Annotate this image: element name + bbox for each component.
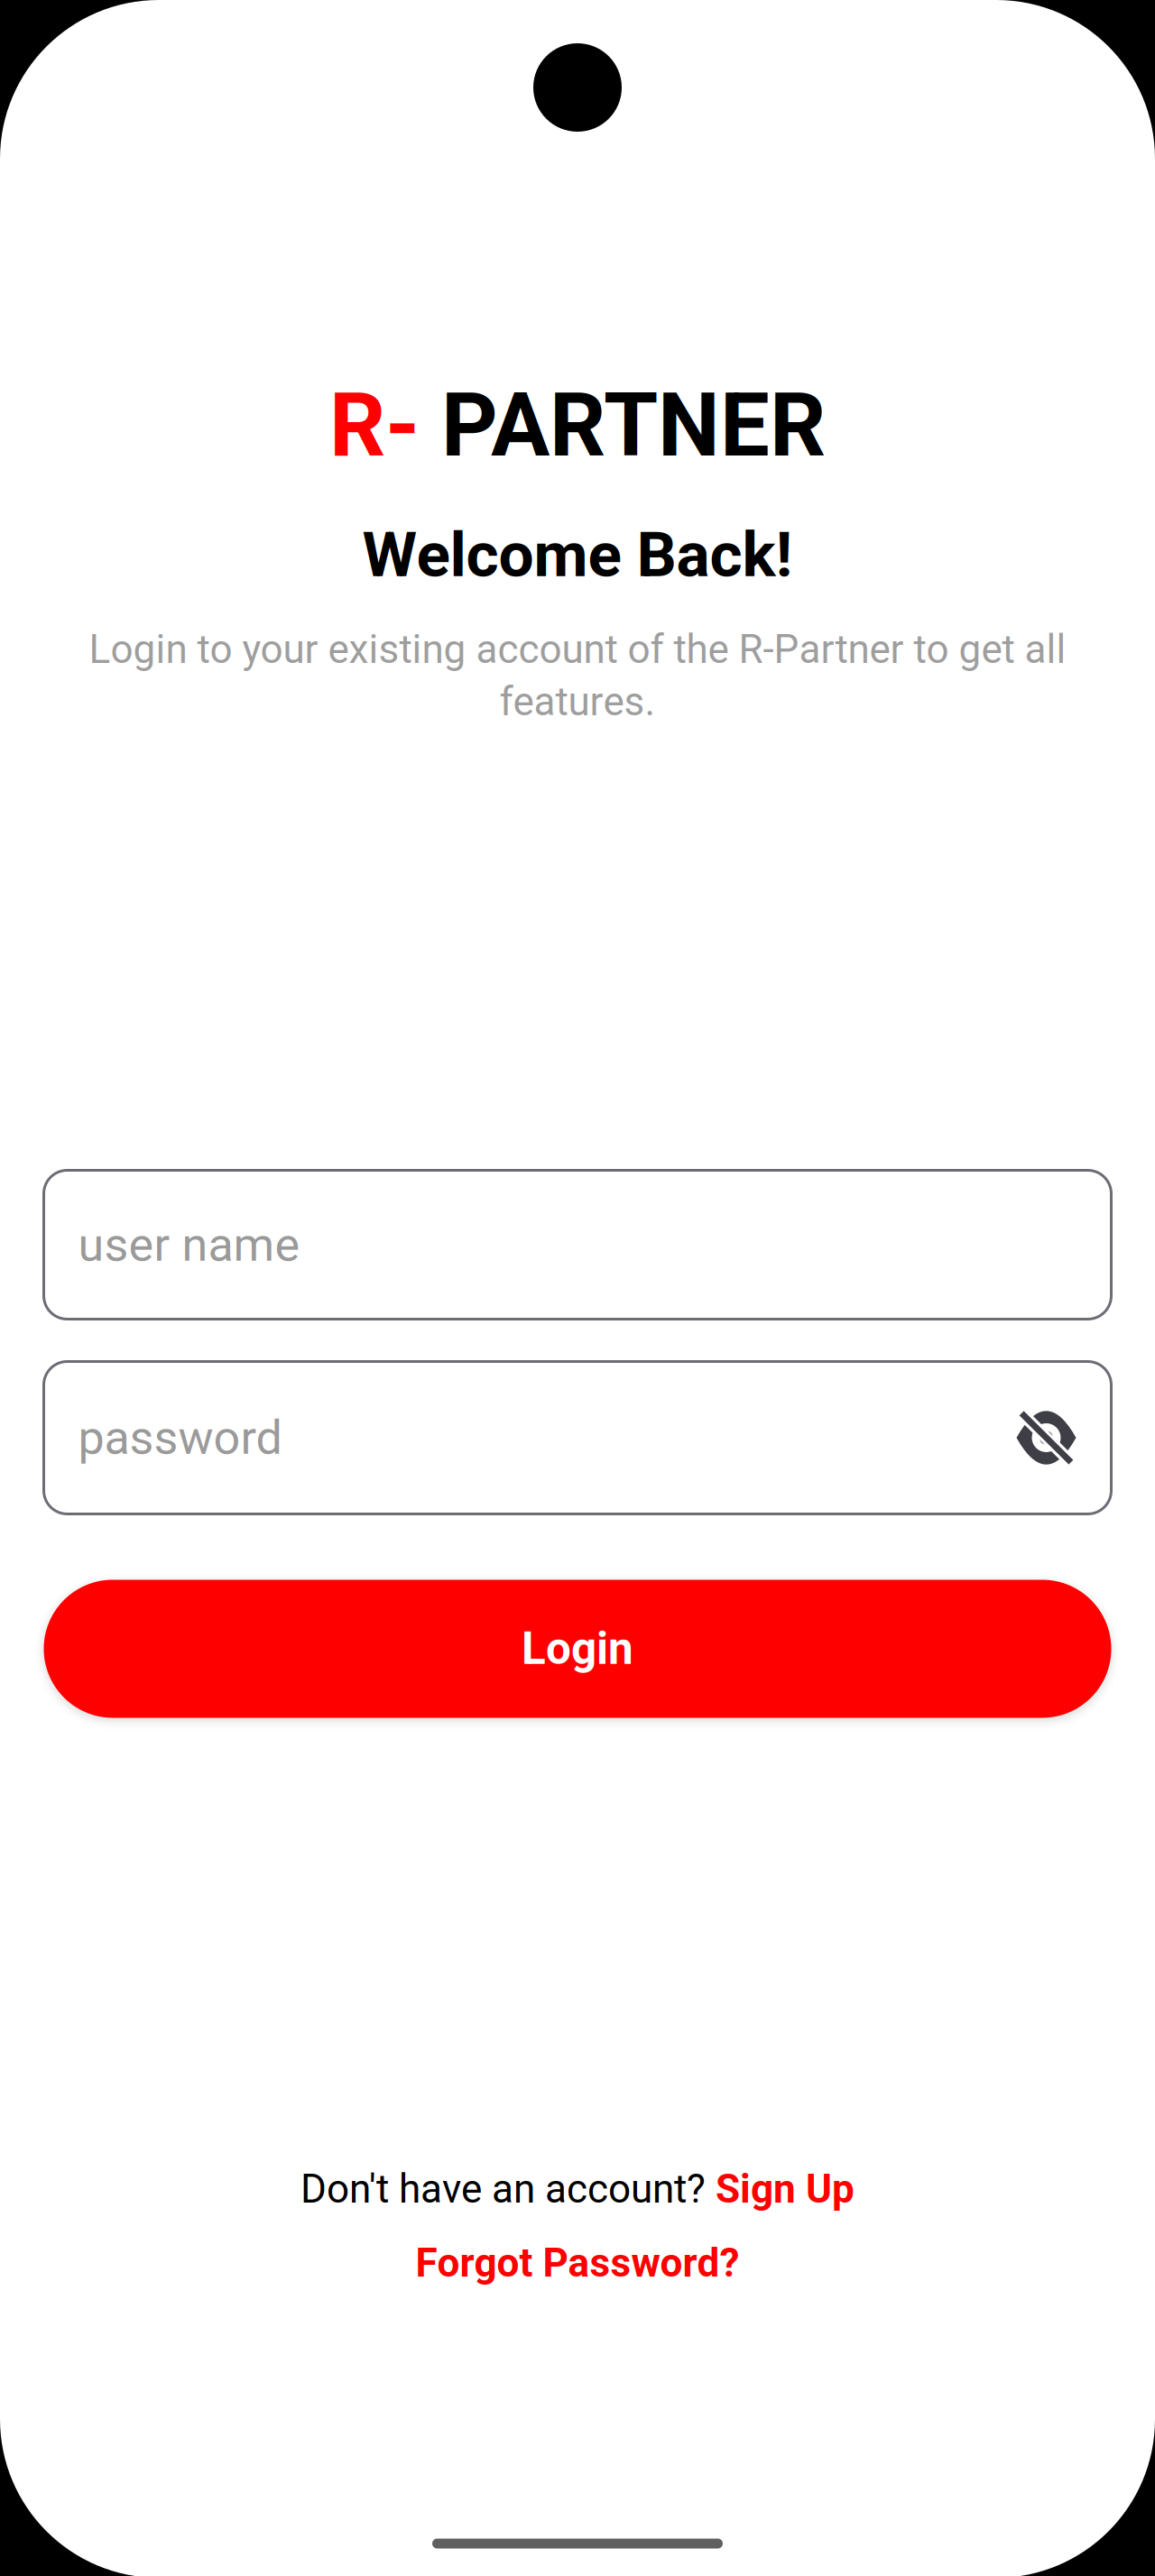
- staticText: Sign Up: [716, 2166, 855, 2212]
- staticText: Forgot Password?: [416, 2240, 739, 2286]
- staticText: user name: [78, 1217, 300, 1272]
- button[interactable]: Login: [44, 1580, 1111, 1718]
- staticText: Welcome Back!: [362, 518, 793, 591]
- staticText: R-: [329, 374, 420, 477]
- button[interactable]: Forgot Password?: [0, 2234, 1155, 2292]
- staticText: Login: [522, 1623, 633, 1675]
- staticText: password: [78, 1410, 282, 1465]
- button[interactable]: Show password: [996, 1387, 1097, 1488]
- staticText: features.: [499, 678, 656, 725]
- staticText: Don't have an account?: [300, 2166, 716, 2212]
- staticText: Login to your existing account of the R-…: [89, 626, 1066, 673]
- button[interactable]: Sign Up: [716, 2166, 855, 2212]
- staticText: PARTNER: [420, 374, 826, 477]
